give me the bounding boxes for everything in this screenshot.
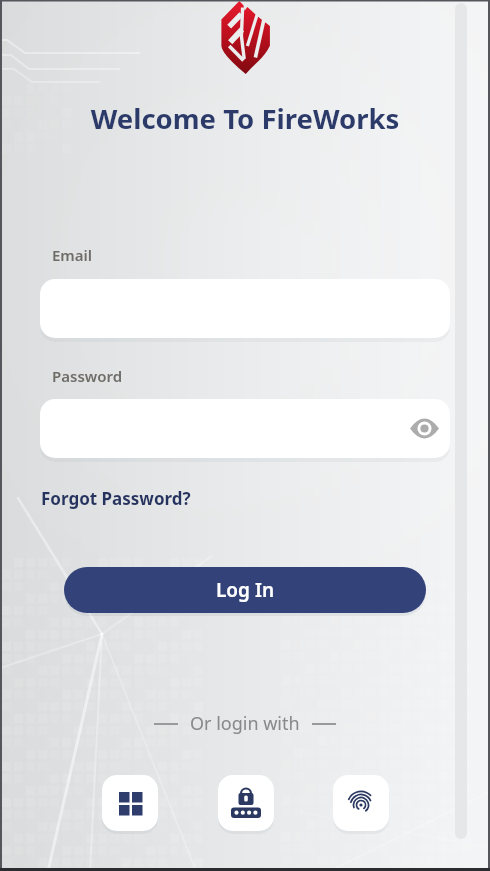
button[interactable]: Log In	[64, 567, 426, 613]
staticText: Welcome To FireWorks	[0, 100, 490, 137]
button[interactable]	[218, 775, 274, 831]
staticText: Or login with	[190, 711, 300, 736]
button[interactable]: Forgot Password?	[41, 487, 191, 510]
staticText: Log In	[216, 577, 275, 603]
button[interactable]	[102, 775, 158, 831]
staticText: Password	[52, 366, 123, 386]
button[interactable]	[40, 399, 450, 458]
button[interactable]	[333, 775, 389, 831]
staticText: Email	[52, 245, 93, 265]
button[interactable]	[410, 419, 439, 438]
